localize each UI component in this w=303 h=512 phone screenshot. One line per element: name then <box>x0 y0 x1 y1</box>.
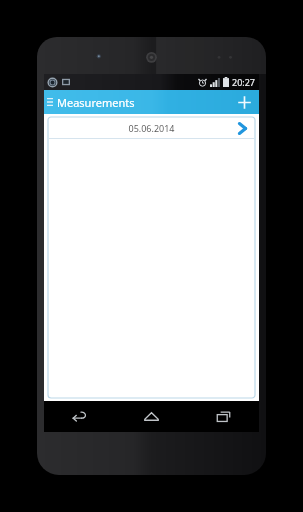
staticText: 20:27 <box>232 76 256 88</box>
button[interactable]: Open navigation drawer <box>44 90 55 114</box>
button[interactable]: Recent apps <box>187 401 259 432</box>
staticText: Measurements <box>57 95 135 110</box>
staticText: 05.06.2014 <box>128 122 175 134</box>
button[interactable]: 05.06.2014 <box>48 117 255 139</box>
button[interactable]: Add measurement <box>229 90 259 114</box>
button[interactable]: Back <box>44 401 115 432</box>
button[interactable]: Home <box>115 401 187 432</box>
